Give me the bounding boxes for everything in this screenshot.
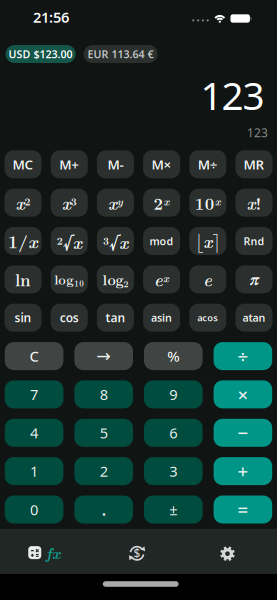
staticText: M÷ xyxy=(198,155,218,173)
button[interactable]: . xyxy=(74,495,133,523)
staticText: x2 xyxy=(15,191,30,214)
button[interactable]: log10 xyxy=(51,265,88,293)
button[interactable]: 1/x xyxy=(4,227,41,255)
button[interactable]: M÷ xyxy=(189,150,226,178)
button[interactable]: → xyxy=(74,342,133,370)
staticText: acos xyxy=(197,311,218,324)
staticText: M- xyxy=(107,155,123,173)
staticText: Rnd xyxy=(243,234,264,248)
staticText: 21:56 xyxy=(33,7,69,27)
staticText: 5 xyxy=(100,423,108,443)
staticText: = xyxy=(237,497,248,522)
button[interactable]: × xyxy=(214,380,272,408)
button[interactable]: Settings xyxy=(219,545,236,562)
button[interactable]: 0 xyxy=(5,495,63,523)
staticText: sin xyxy=(14,310,31,326)
staticText: MC xyxy=(12,155,33,173)
button[interactable]: e xyxy=(189,265,226,293)
button[interactable]: 1 xyxy=(5,457,63,485)
staticText: C xyxy=(30,346,39,366)
button[interactable]: 8 xyxy=(74,380,133,408)
button[interactable]: C xyxy=(5,342,63,370)
button[interactable]: 2x xyxy=(143,189,180,217)
staticText: ⌊x⌉ xyxy=(195,229,220,253)
staticText: mod xyxy=(150,234,174,248)
staticText: 1/x xyxy=(8,229,38,253)
button[interactable]: EUR 113.64 € xyxy=(84,45,158,63)
staticText: 123 xyxy=(200,69,264,121)
staticText: cos xyxy=(60,310,79,326)
button[interactable]: M+ xyxy=(51,150,88,178)
button[interactable]: 5 xyxy=(74,419,133,447)
staticText: tan xyxy=(105,310,125,326)
staticText: $ xyxy=(133,545,140,561)
staticText: + xyxy=(237,459,248,483)
button[interactable]: 9 xyxy=(144,380,203,408)
button[interactable]: Calculator xyxy=(28,541,61,564)
staticText: xy xyxy=(108,191,123,214)
staticText: 0 xyxy=(30,500,38,519)
button[interactable]: M- xyxy=(97,150,134,178)
staticText: x3 xyxy=(62,191,77,214)
button[interactable]: MR xyxy=(235,150,272,178)
staticText: % xyxy=(167,346,179,366)
button[interactable]: MC xyxy=(4,150,41,178)
staticText: → xyxy=(96,346,111,366)
button[interactable]: x3 xyxy=(51,189,88,217)
button[interactable]: tan xyxy=(97,304,134,332)
staticText: M+ xyxy=(59,155,79,173)
button[interactable]: ln xyxy=(4,265,41,293)
button[interactable]: mod xyxy=(143,227,180,255)
button[interactable]: 3√x xyxy=(97,227,134,255)
staticText: 3√x xyxy=(103,228,128,254)
button[interactable]: ÷ xyxy=(214,342,272,370)
button[interactable]: ⌊x⌉ xyxy=(189,227,226,255)
staticText: M× xyxy=(152,155,172,173)
staticText: . xyxy=(102,499,106,520)
staticText: 6 xyxy=(169,423,177,443)
staticText: 9 xyxy=(169,385,177,404)
button[interactable]: cos xyxy=(51,304,88,332)
button[interactable]: USD $123.00 xyxy=(6,45,76,63)
button[interactable]: sin xyxy=(4,304,41,332)
staticText: EUR 113.64 € xyxy=(88,47,154,61)
button[interactable]: Rnd xyxy=(235,227,272,255)
button[interactable]: atan xyxy=(235,304,272,332)
button[interactable]: ± xyxy=(144,495,203,523)
staticText: × xyxy=(237,382,248,407)
button[interactable]: + xyxy=(214,457,272,485)
staticText: 2x xyxy=(154,191,170,214)
staticText: 10x xyxy=(195,191,221,214)
staticText: x! xyxy=(246,191,261,214)
button[interactable]: asin xyxy=(143,304,180,332)
button[interactable]: π xyxy=(235,265,272,293)
button[interactable]: x! xyxy=(235,189,272,217)
button[interactable]: Currency converter xyxy=(128,545,145,562)
button[interactable]: acos xyxy=(189,304,226,332)
staticText: ex xyxy=(154,268,169,291)
staticText: log10 xyxy=(54,270,84,289)
button[interactable]: 3 xyxy=(144,457,203,485)
button[interactable]: log2 xyxy=(97,265,134,293)
staticText: 1 xyxy=(30,461,38,481)
staticText: atan xyxy=(242,311,265,325)
button[interactable]: M× xyxy=(143,150,180,178)
staticText: 123 xyxy=(247,124,268,140)
staticText: USD $123.00 xyxy=(9,47,73,61)
button[interactable]: 2 xyxy=(74,457,133,485)
button[interactable]: 7 xyxy=(5,380,63,408)
staticText: MR xyxy=(243,155,264,173)
button[interactable]: xy xyxy=(97,189,134,217)
button[interactable]: x2 xyxy=(4,189,41,217)
staticText: 8 xyxy=(100,385,108,404)
button[interactable]: 6 xyxy=(144,419,203,447)
button[interactable]: 2√x xyxy=(51,227,88,255)
staticText: ln xyxy=(15,268,31,291)
button[interactable]: − xyxy=(214,419,272,447)
button[interactable]: ex xyxy=(143,265,180,293)
button[interactable]: 4 xyxy=(5,419,63,447)
button[interactable]: % xyxy=(144,342,203,370)
button[interactable]: = xyxy=(214,495,272,523)
button[interactable]: 10x xyxy=(189,189,226,217)
staticText: 4 xyxy=(30,423,38,443)
